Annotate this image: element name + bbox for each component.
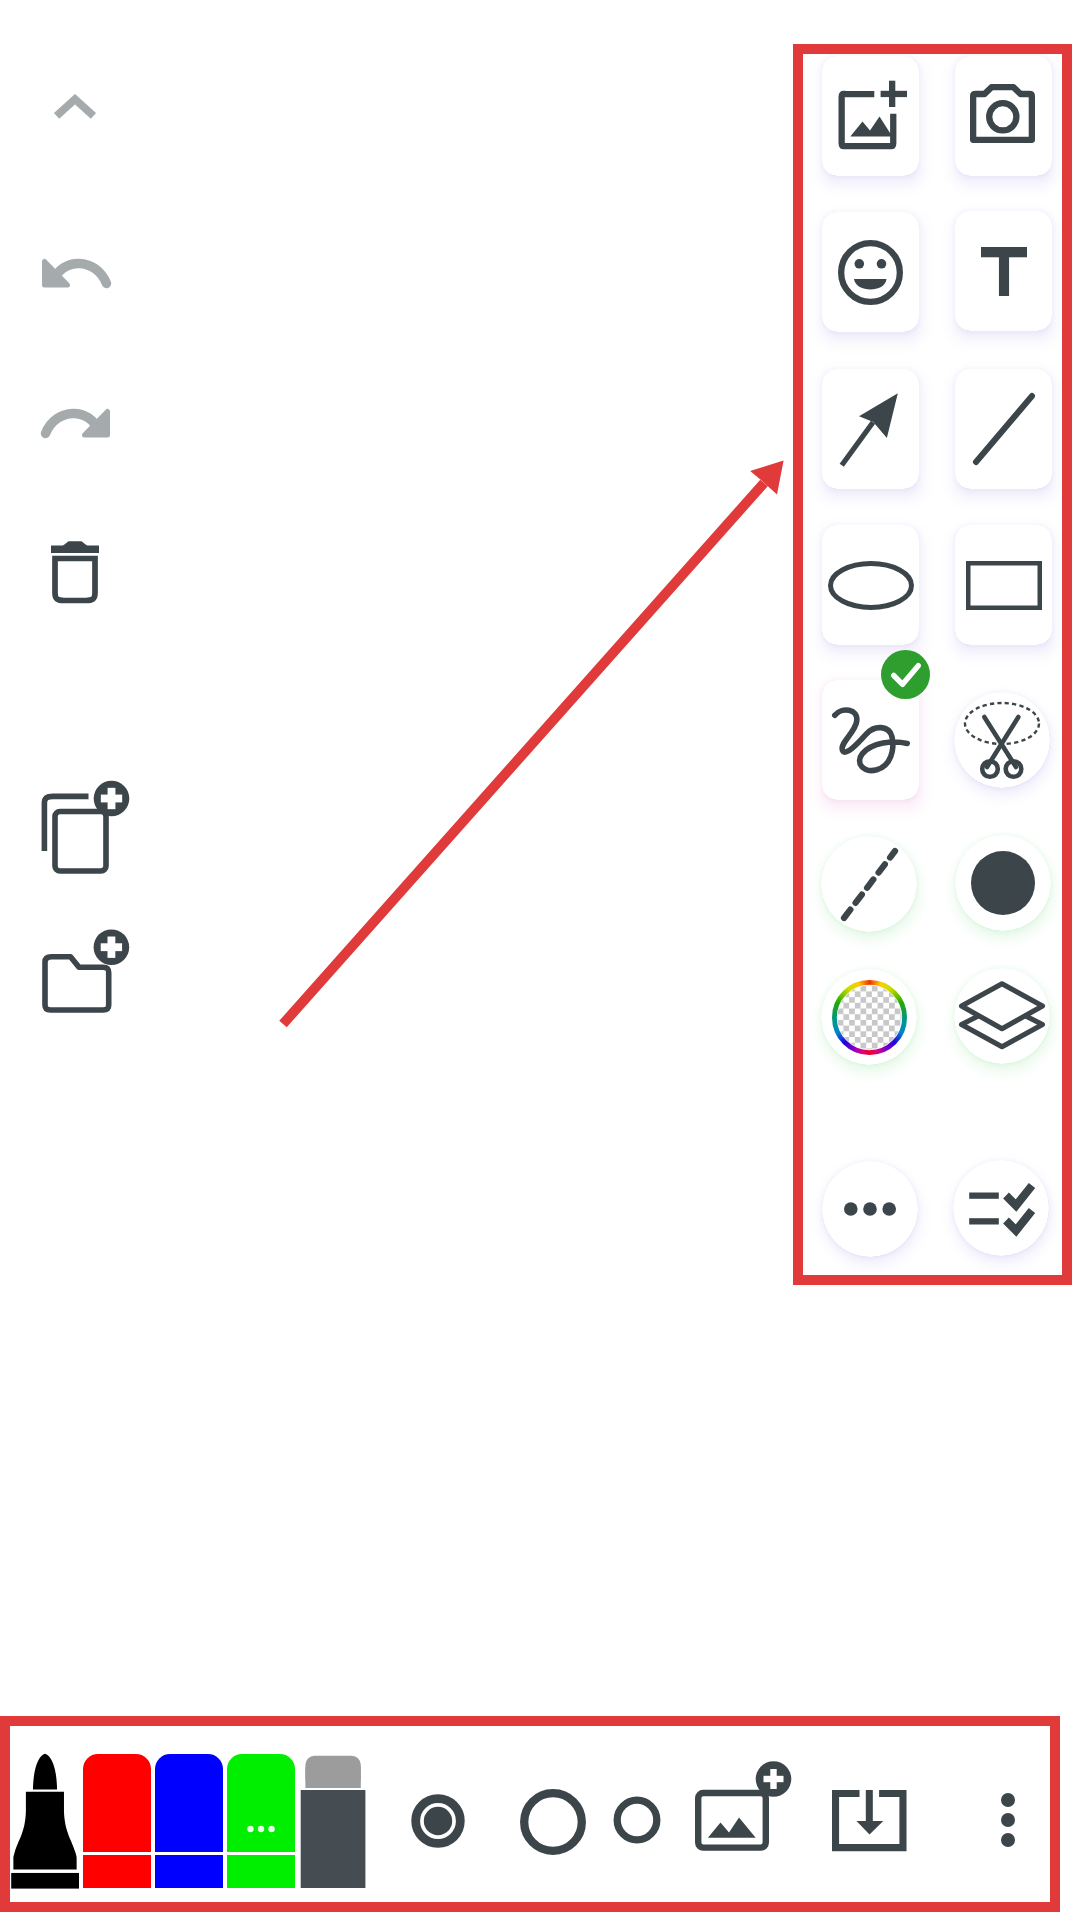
button[interactable]: Collapse toolbar	[55, 94, 95, 120]
other: Selected	[881, 650, 930, 699]
button[interactable]: Text	[955, 211, 1052, 331]
button[interactable]: Colour picker	[821, 969, 917, 1065]
button[interactable]: More options	[1001, 1793, 1015, 1847]
button[interactable]: Ellipse	[822, 525, 919, 645]
button[interactable]: Undo	[40, 256, 110, 288]
button[interactable]: Save	[832, 1790, 907, 1852]
button[interactable]: Layers	[954, 968, 1050, 1064]
button[interactable]: Add image	[822, 56, 919, 176]
button[interactable]: Large brush size	[411, 1794, 465, 1848]
button[interactable]: Red pen	[83, 1754, 151, 1888]
button[interactable]: Blue pen	[155, 1754, 223, 1888]
button[interactable]: Redo	[42, 406, 112, 438]
button[interactable]: More options	[822, 1161, 918, 1257]
button[interactable]: Cut out	[954, 692, 1050, 788]
button[interactable]: Line	[955, 369, 1052, 489]
button[interactable]: Delete	[51, 541, 99, 603]
button[interactable]: Duplicate	[41, 780, 129, 872]
button[interactable]: Medium brush size	[520, 1789, 586, 1855]
button[interactable]: Insert image	[695, 1762, 792, 1851]
button[interactable]: Camera	[955, 56, 1052, 176]
button[interactable]: Arrow	[822, 369, 919, 489]
button[interactable]: Black marker	[11, 1753, 79, 1889]
button[interactable]: Green pen	[227, 1754, 295, 1888]
button[interactable]: Small brush size	[613, 1796, 661, 1844]
button[interactable]: New folder	[41, 925, 129, 1013]
button[interactable]: Dashed stroke	[821, 836, 917, 932]
button[interactable]: Eraser	[300, 1755, 366, 1889]
button[interactable]: Sticker	[822, 212, 919, 332]
button[interactable]: Rectangle	[955, 525, 1052, 645]
button[interactable]: Freehand	[822, 680, 919, 800]
button[interactable]: Select items	[953, 1160, 1049, 1256]
button[interactable]: Fill colour	[955, 835, 1051, 931]
